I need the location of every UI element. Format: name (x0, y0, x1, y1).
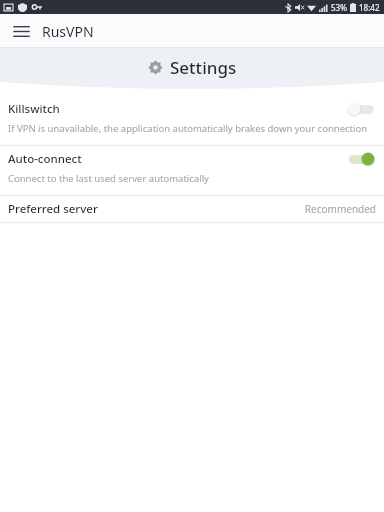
staticText: Preferred server (8, 201, 304, 217)
button[interactable]: Open navigation menu (6, 16, 36, 46)
staticText: Killswitch (8, 101, 346, 117)
button[interactable]: Killswitch (0, 96, 384, 145)
staticText: Recommended (304, 202, 376, 216)
button[interactable]: Auto-connect (0, 146, 384, 195)
staticText: If VPN is unavailable, the application a… (8, 122, 368, 135)
staticText: Settings (170, 56, 237, 79)
staticText: Connect to the last used server automati… (8, 172, 209, 185)
button[interactable]: Toggle off (346, 100, 376, 118)
staticText: 18:42 (359, 2, 380, 13)
staticText: 53% (331, 2, 347, 13)
staticText: RusVPN (42, 22, 94, 41)
button[interactable]: Toggle on (346, 150, 376, 168)
staticText: Auto-connect (8, 151, 346, 167)
button[interactable]: Preferred server (0, 196, 384, 222)
